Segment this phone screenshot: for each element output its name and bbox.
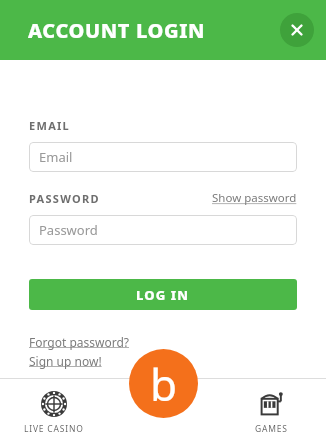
staticText: Show password [212, 190, 297, 206]
staticText: PASSWORD [29, 191, 100, 206]
staticText: EMAIL [29, 118, 71, 133]
button[interactable]: Email [29, 142, 297, 172]
button[interactable]: Close [280, 13, 314, 47]
staticText: Forgot password? [29, 334, 130, 350]
button[interactable]: Home [129, 349, 198, 418]
staticText: ACCOUNT LOGIN [28, 17, 206, 44]
button[interactable]: Forgot password? [29, 334, 130, 350]
staticText: Email [39, 148, 73, 166]
staticText: Password [39, 221, 98, 239]
button[interactable]: Show password [212, 190, 297, 206]
staticText: LOG IN [136, 286, 190, 304]
button[interactable]: LOG IN [29, 279, 297, 310]
staticText: b [150, 354, 178, 414]
button[interactable]: Live Casino [0, 378, 108, 447]
button[interactable]: Sign up now! [29, 353, 102, 369]
button[interactable]: Password [29, 215, 297, 245]
staticText: LIVE CASINO [24, 423, 84, 435]
button[interactable]: Games [217, 378, 326, 447]
staticText: Sign up now! [29, 353, 102, 369]
staticText: GAMES [255, 423, 288, 435]
